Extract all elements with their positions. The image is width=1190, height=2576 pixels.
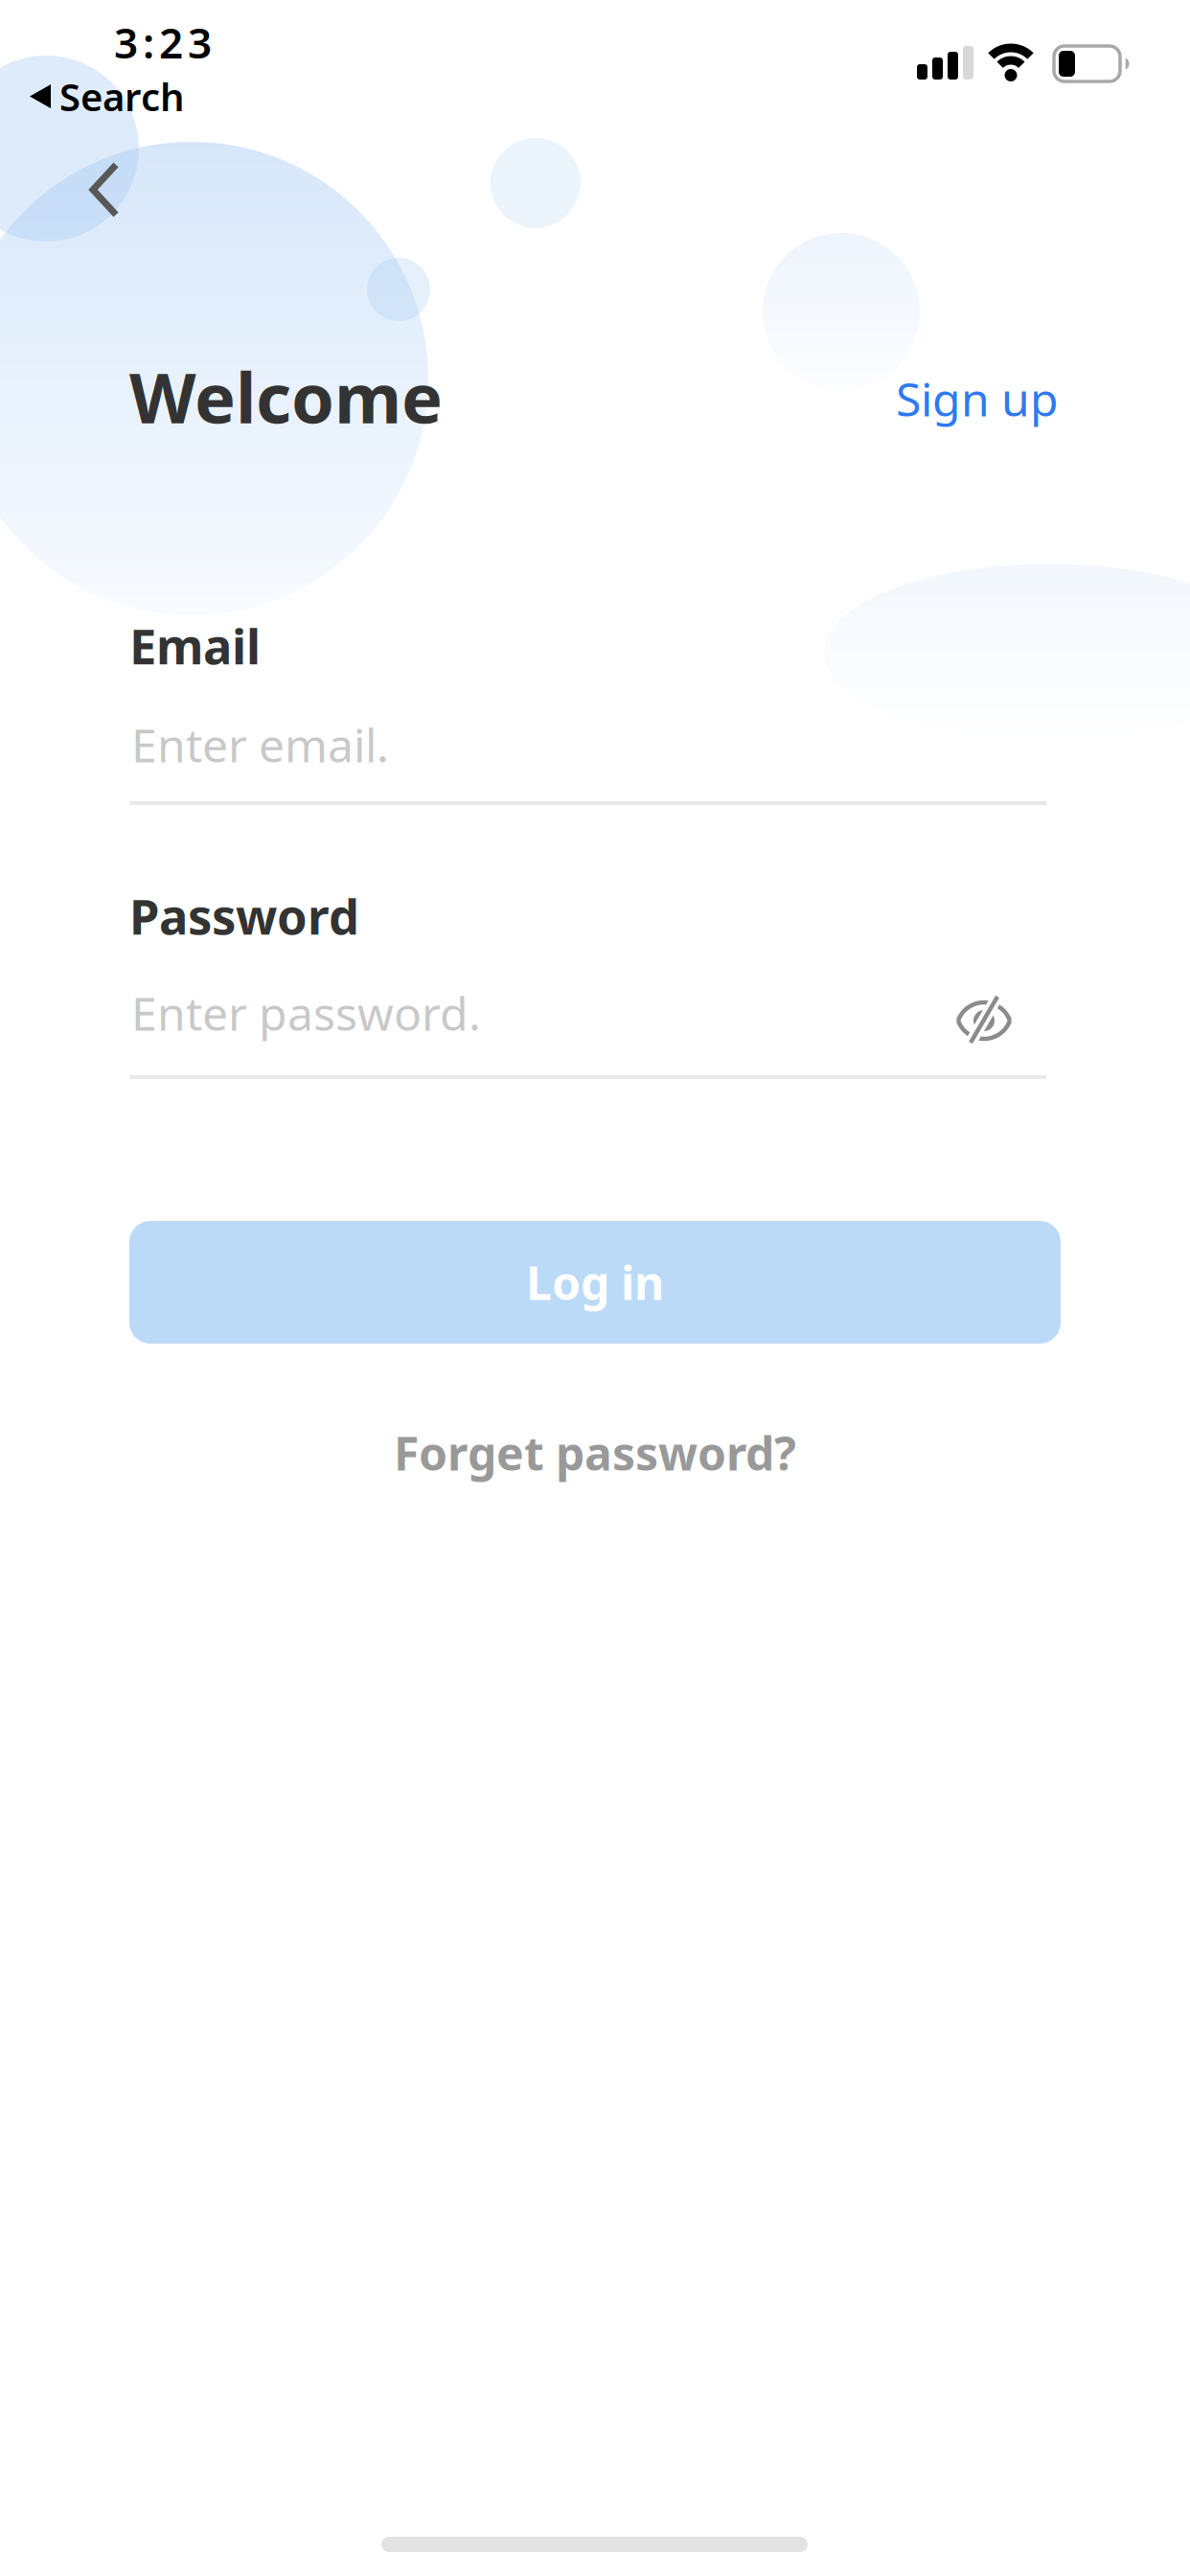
button[interactable]: Forget password? — [394, 1422, 796, 1483]
staticText: Welcome — [129, 351, 443, 442]
button[interactable]: Show password — [958, 994, 1010, 1047]
staticText: 3:23 — [114, 14, 212, 70]
staticText: Email — [129, 613, 261, 678]
staticText: Forget password? — [394, 1422, 796, 1483]
staticText: Log in — [526, 1252, 664, 1313]
button[interactable]: Back to Search — [30, 71, 185, 122]
staticText: Enter email. — [131, 714, 389, 775]
button[interactable]: Log in — [129, 1221, 1061, 1344]
staticText: Enter password. — [131, 982, 481, 1043]
button[interactable]: Back — [81, 153, 127, 226]
staticText: Search — [59, 71, 185, 122]
button[interactable]: Sign up — [896, 368, 1059, 429]
staticText: Sign up — [896, 368, 1059, 429]
staticText: Password — [129, 884, 359, 948]
